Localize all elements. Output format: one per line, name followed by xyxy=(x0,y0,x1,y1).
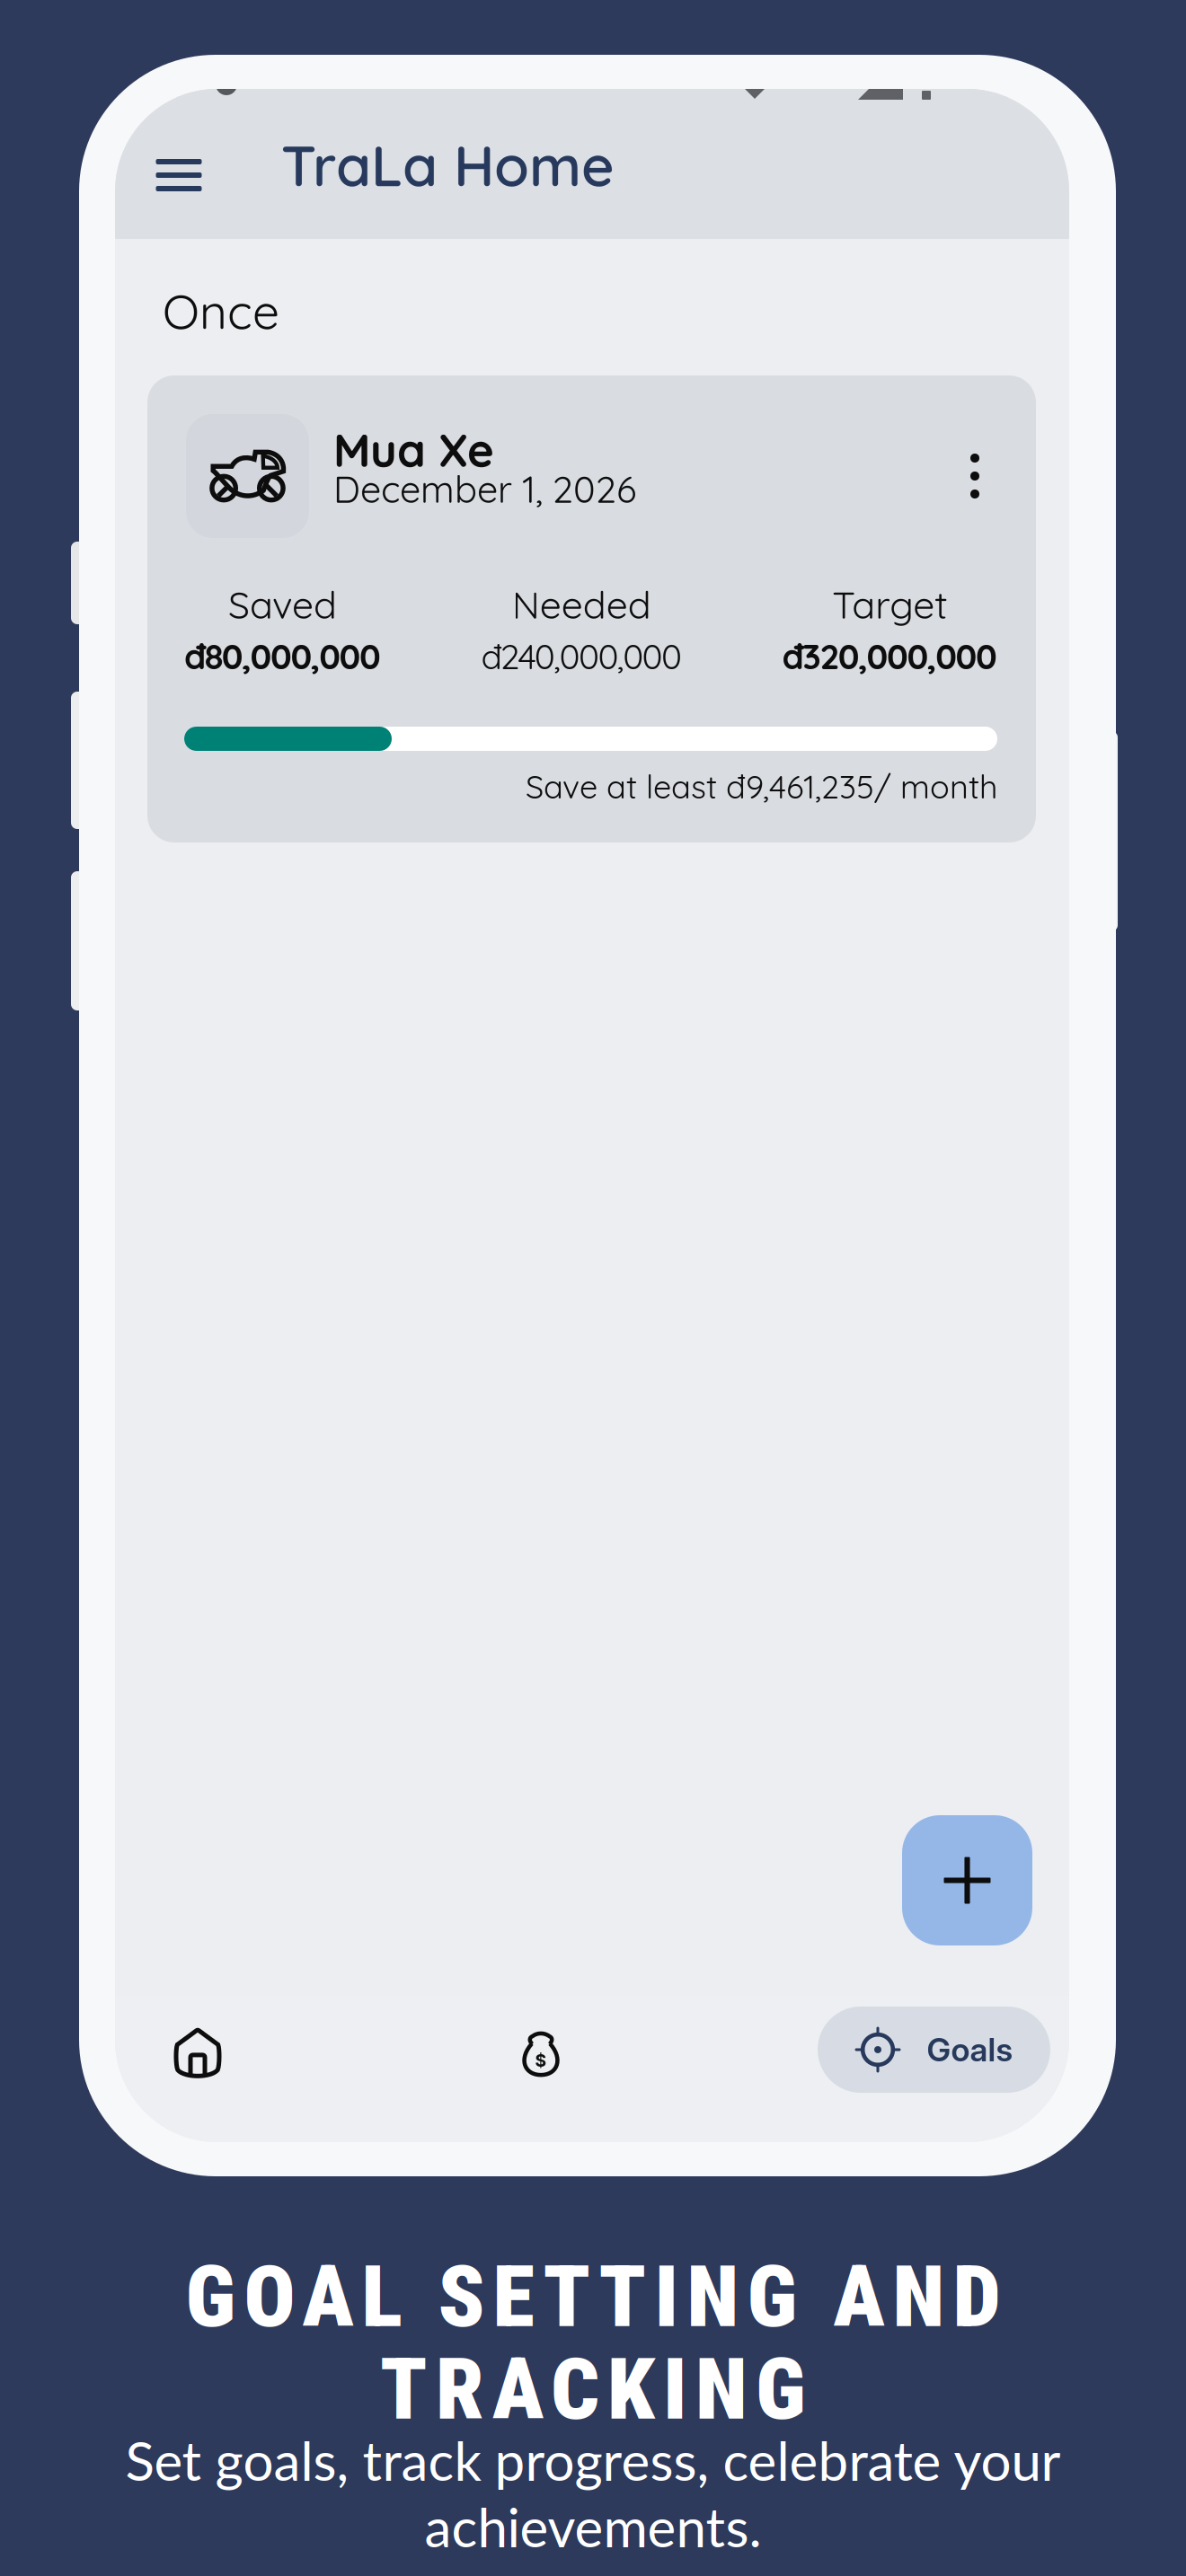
button[interactable]: Home xyxy=(130,1997,265,2109)
staticText: Saved xyxy=(228,580,337,628)
staticText: đ240,000,000 xyxy=(481,634,682,678)
staticText: Target xyxy=(832,580,947,628)
staticText: $ xyxy=(535,2050,547,2071)
button[interactable]: Add goal xyxy=(902,1815,1032,1945)
staticText: GOAL SETTING AND xyxy=(186,2247,1000,2347)
button[interactable]: Goal options xyxy=(943,414,1006,538)
staticText: December 1, 2026 xyxy=(333,466,636,512)
staticText: đ80,000,000 xyxy=(184,634,381,678)
staticText: Needed xyxy=(512,580,651,628)
button[interactable]: Budget xyxy=(474,1998,608,2110)
button[interactable]: Menu xyxy=(136,132,222,218)
staticText: Once xyxy=(163,281,279,341)
button[interactable]: Goals xyxy=(818,2007,1050,2093)
staticText: Set goals, track progress, celebrate you… xyxy=(125,2428,1061,2492)
staticText: TraLa Home xyxy=(281,129,615,200)
staticText: Save at least đ9,461,235/ month xyxy=(526,766,997,807)
staticText: achievements. xyxy=(425,2494,761,2559)
staticText: đ320,000,000 xyxy=(782,634,997,678)
staticText: Goals xyxy=(927,2030,1013,2069)
staticText: Mua Xe xyxy=(333,421,494,478)
staticText: TRACKING xyxy=(380,2340,806,2439)
